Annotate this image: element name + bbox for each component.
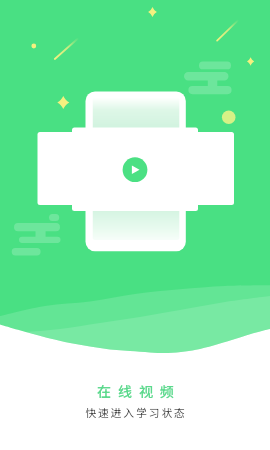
- staticText: 快速进入学习状态: [85, 404, 187, 420]
- staticText: 在线视频: [97, 381, 181, 401]
